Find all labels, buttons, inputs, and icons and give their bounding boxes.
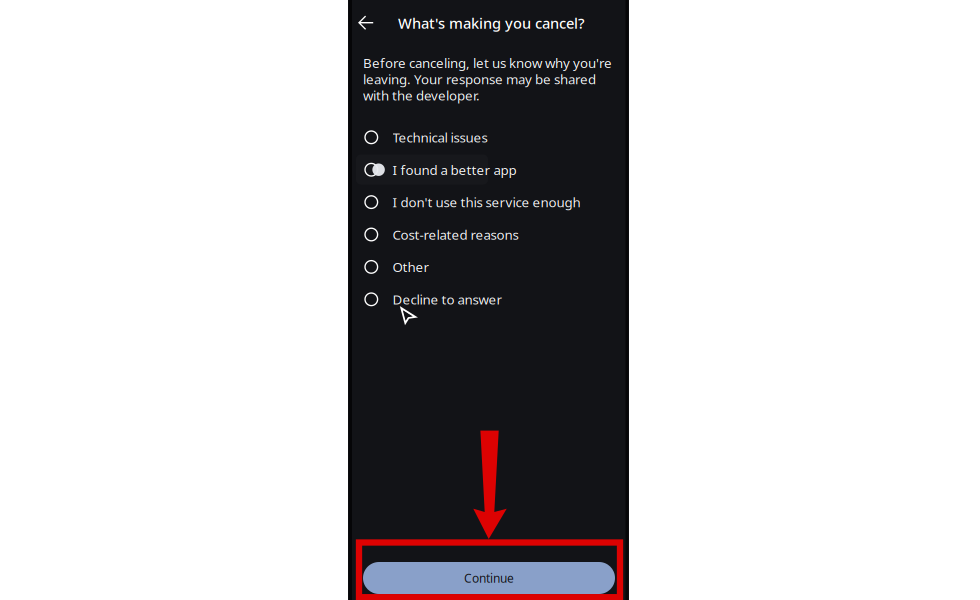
staticText: What's making you cancel? [398,13,585,33]
staticText: I found a better app [393,161,517,179]
button[interactable]: Technical issues [365,121,629,153]
button[interactable]: I don't use this service enough [365,186,629,218]
button[interactable]: Cost-related reasons [365,218,629,251]
staticText: Continue [464,570,514,586]
staticText: Other [393,258,430,276]
button[interactable]: I found a better app [365,153,629,186]
staticText: I don't use this service enough [393,193,581,211]
staticText: Technical issues [393,128,488,146]
staticText: Before canceling, let us know why you're… [363,54,612,104]
button[interactable]: Other [365,251,629,283]
button[interactable]: Decline to answer [365,283,629,315]
staticText: Decline to answer [393,290,503,308]
button[interactable]: Back [353,10,379,36]
button[interactable]: Continue [363,562,615,594]
staticText: Cost-related reasons [393,226,519,243]
